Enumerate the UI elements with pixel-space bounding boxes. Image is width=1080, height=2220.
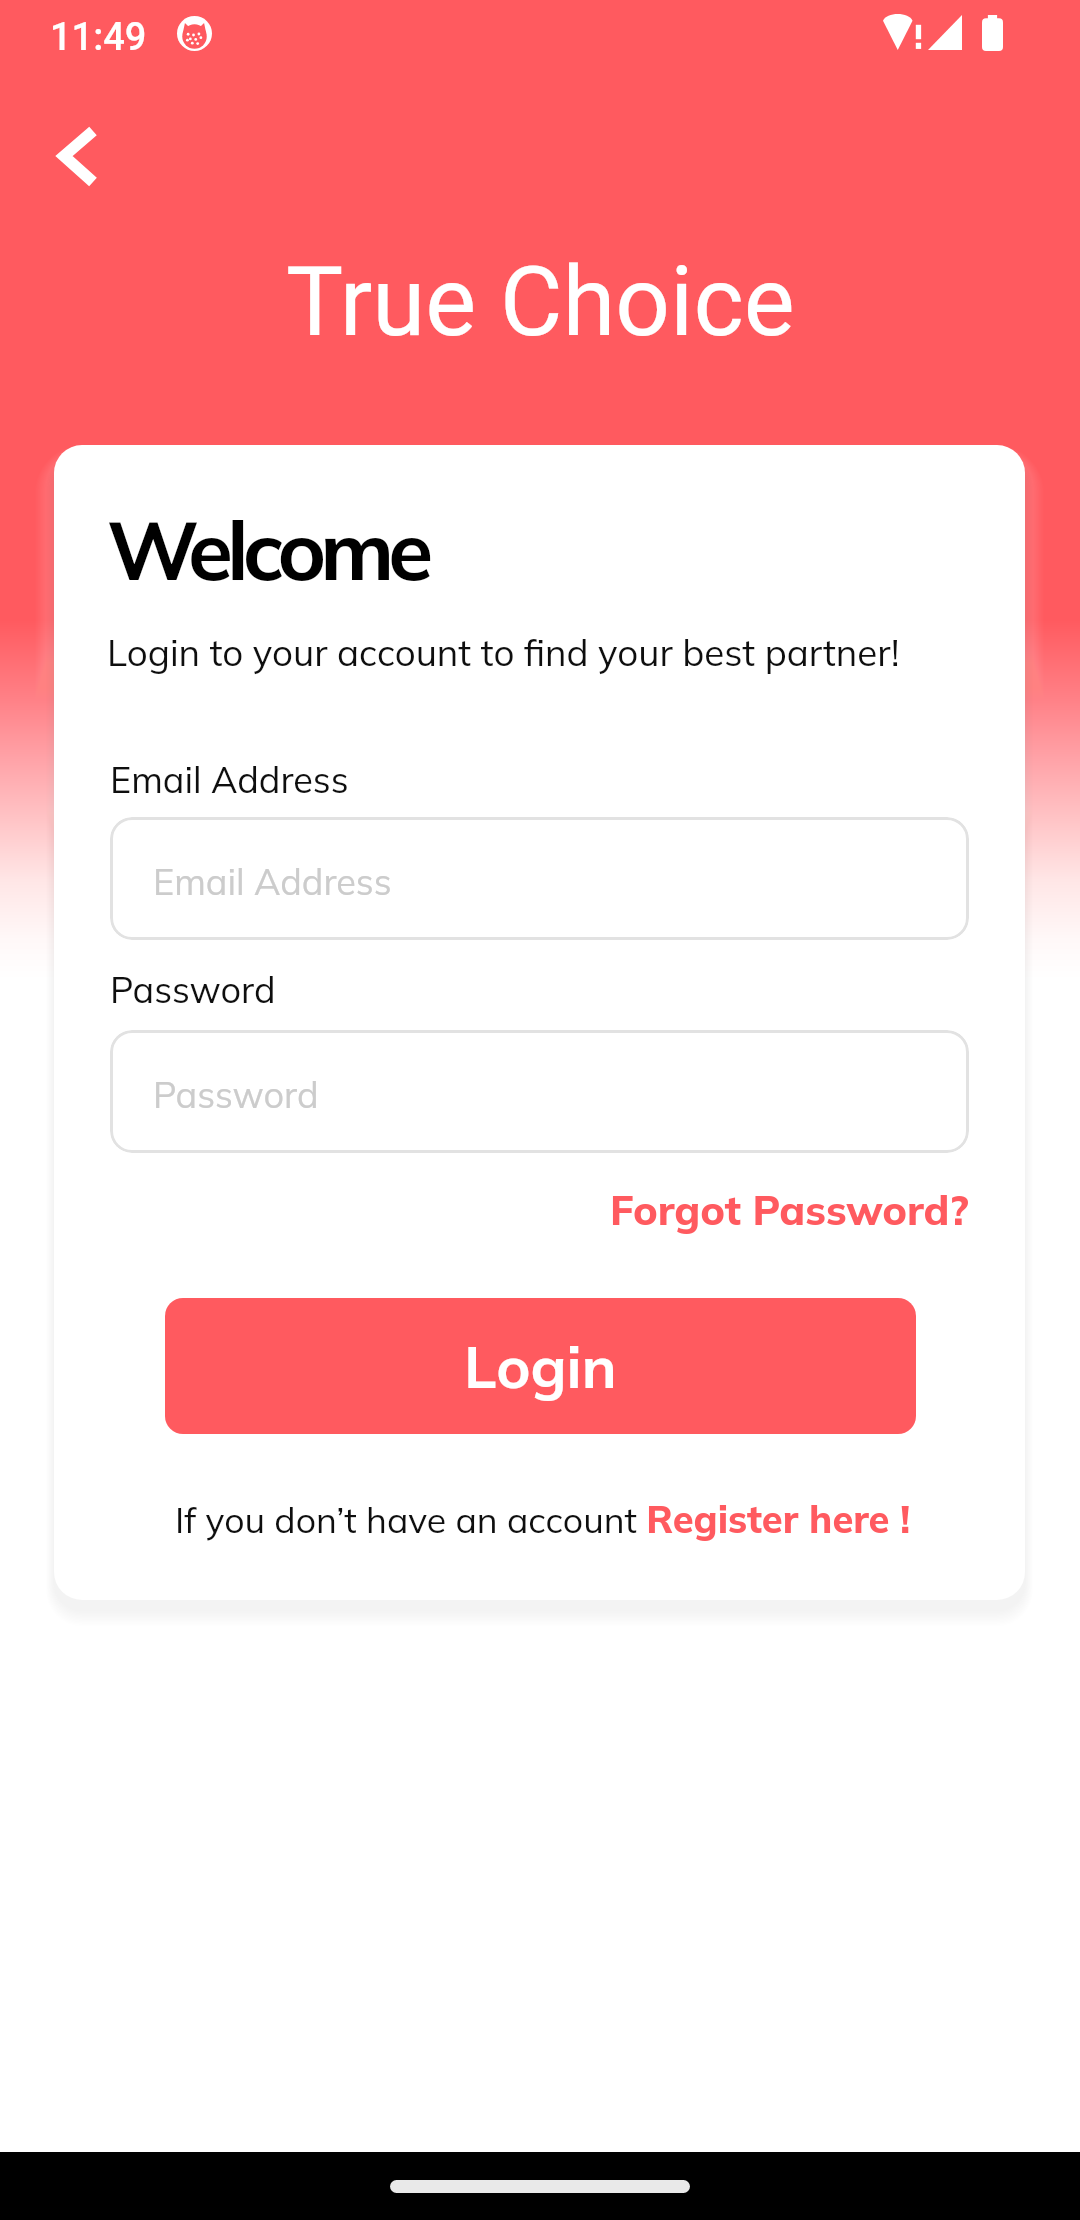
staticText: Login to your account to find your best … [107, 629, 900, 675]
staticText: Forgot Password? [610, 1184, 969, 1235]
staticText: Email Address [153, 859, 392, 904]
button[interactable]: Forgot Password? [600, 1184, 969, 1235]
staticText: Password [153, 1072, 319, 1117]
button[interactable]: Email Address [110, 817, 969, 940]
staticText: 11:49 [50, 15, 147, 60]
button[interactable]: Login [165, 1298, 916, 1434]
button[interactable]: Password [110, 1030, 969, 1153]
staticText: Welcome [107, 498, 428, 601]
staticText: Password [110, 967, 276, 1012]
button[interactable]: Back [28, 108, 124, 204]
staticText: True Choice [286, 246, 795, 359]
button[interactable]: If you don’t have an account Register he… [57, 1495, 1028, 1543]
staticText: Email Address [110, 757, 349, 802]
staticText: Login [464, 1330, 617, 1403]
staticText: If you don’t have an account Register he… [175, 1495, 911, 1543]
